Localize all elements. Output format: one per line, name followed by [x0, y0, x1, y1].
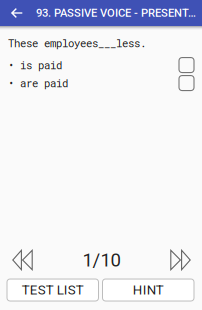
button[interactable]: First question: [6, 246, 39, 274]
button[interactable]: HINT: [102, 279, 194, 301]
button[interactable]: Back: [0, 0, 34, 26]
button[interactable]: • is paid: [0, 56, 202, 74]
button[interactable]: TEST LIST: [7, 279, 98, 301]
staticText: • are paid: [8, 76, 68, 90]
staticText: HINT: [133, 282, 164, 298]
staticText: These employees___less.: [8, 36, 146, 50]
staticText: TEST LIST: [22, 282, 84, 298]
staticText: 1/10: [82, 249, 120, 271]
button[interactable]: • are paid: [0, 74, 202, 92]
staticText: 93. PASSIVE VOICE - PRESENT…: [36, 6, 196, 19]
staticText: • is paid: [8, 58, 62, 72]
button[interactable]: Last question: [164, 246, 197, 274]
